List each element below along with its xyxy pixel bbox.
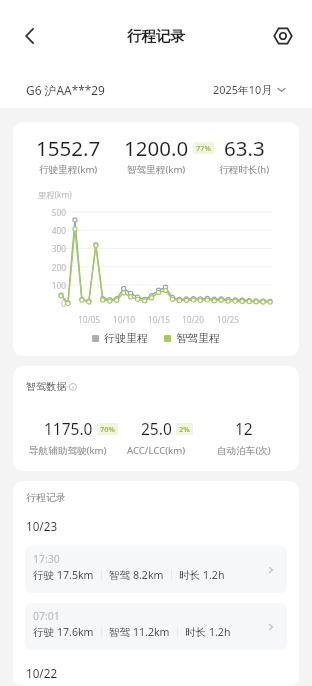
staticText: 0	[38, 298, 66, 309]
staticText: 自动泊车(次)	[217, 444, 271, 457]
staticText: 12	[235, 418, 253, 439]
staticText: 行程时长(h)	[219, 163, 270, 176]
staticText: 10/23	[26, 518, 58, 534]
staticText: 行程记录	[26, 491, 66, 504]
staticText: 25.0	[141, 418, 172, 439]
staticText: 63.3	[224, 134, 265, 162]
staticText: 行驶里程(km)	[39, 163, 98, 176]
button[interactable]: Settings	[263, 16, 303, 56]
button[interactable]: 2025年10月	[213, 82, 286, 97]
staticText: 1200.0	[124, 134, 189, 162]
staticText: 10/22	[26, 665, 58, 681]
staticText: 300	[38, 243, 66, 254]
staticText: 400	[38, 225, 66, 236]
staticText: 智驾 8.2km	[109, 568, 164, 582]
staticText: 行驶 17.5km	[33, 568, 94, 582]
staticText: 500	[38, 207, 66, 218]
staticText: 10/20	[178, 314, 208, 325]
staticText: 07:01	[33, 609, 60, 623]
staticText: 2025年10月	[213, 82, 273, 97]
staticText: ACC/LCC(km)	[127, 444, 186, 457]
staticText: 智驾数据	[26, 380, 67, 393]
staticText: 100	[38, 280, 66, 291]
staticText: 10/10	[109, 314, 139, 325]
staticText: 76%	[100, 424, 115, 434]
staticText: 智驾里程	[176, 331, 220, 345]
staticText: 200	[38, 262, 66, 273]
button[interactable]: 07:01	[25, 603, 287, 650]
staticText: 行驶里程	[104, 331, 148, 345]
staticText: 10/25	[213, 314, 243, 325]
button[interactable]: 17:30	[25, 546, 287, 593]
staticText: 10/05	[74, 314, 104, 325]
staticText: 时长 1.2h	[185, 625, 231, 639]
staticText: 1175.0	[44, 418, 93, 439]
staticText: 77%	[196, 143, 211, 153]
staticText: 10/15	[144, 314, 174, 325]
staticText: 智驾里程(km)	[127, 163, 186, 176]
staticText: 里程(km)	[38, 189, 72, 200]
staticText: G6 沪AA***29	[26, 82, 105, 98]
button[interactable]: Back	[10, 16, 50, 56]
staticText: 时长 1.2h	[179, 568, 225, 582]
staticText: 智驾 11.2km	[109, 625, 170, 639]
staticText: 1552.7	[36, 134, 101, 162]
staticText: 行程记录	[127, 27, 185, 45]
staticText: 行驶 17.6km	[33, 625, 94, 639]
staticText: 2%	[179, 424, 190, 434]
staticText: 导航辅助驾驶(km)	[29, 444, 107, 457]
staticText: 17:30	[33, 552, 60, 566]
